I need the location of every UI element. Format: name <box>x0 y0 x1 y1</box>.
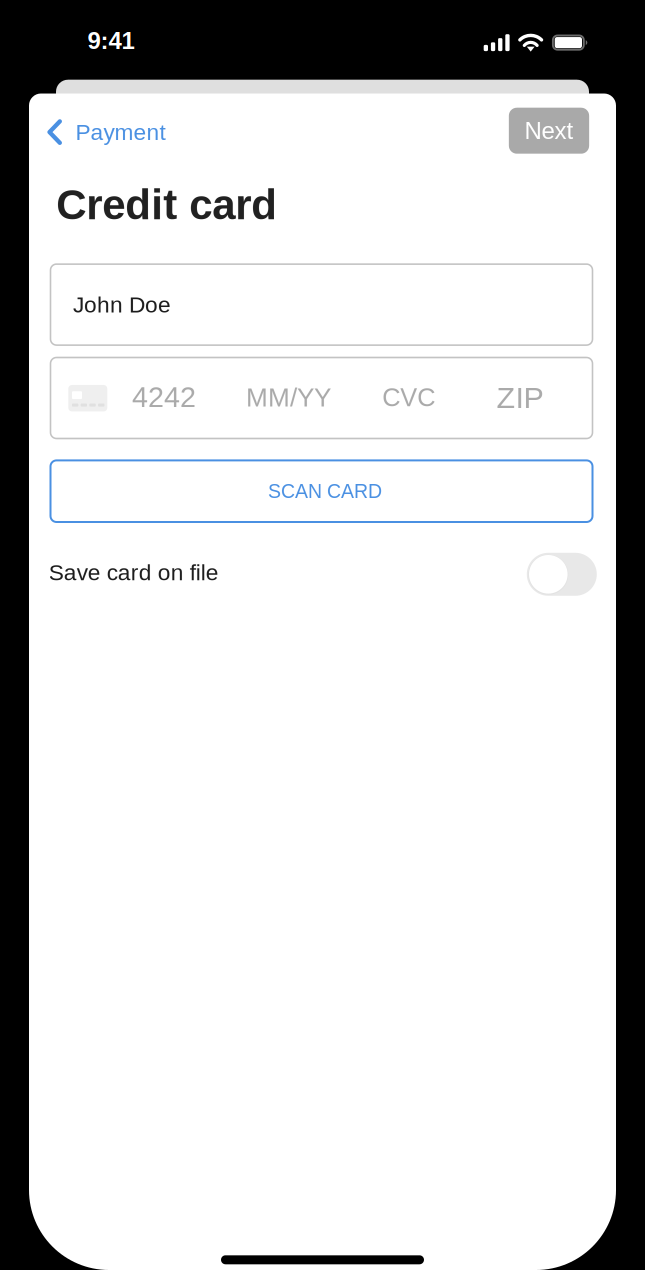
staticText: Credit card <box>56 181 277 228</box>
button[interactable]: SCAN CARD <box>50 460 592 522</box>
staticText: CVC <box>382 383 435 411</box>
staticText: John Doe <box>73 292 171 317</box>
staticText: SCAN CARD <box>268 480 382 502</box>
staticText: MM/YY <box>246 383 331 412</box>
staticText: ZIP <box>496 380 543 414</box>
button[interactable]: Payment <box>47 105 167 159</box>
staticText: Payment <box>76 119 166 145</box>
staticText: Save card on file <box>49 560 219 585</box>
staticText: Next <box>524 117 573 144</box>
button[interactable]: Next <box>509 108 589 154</box>
button[interactable]: Save card on file <box>29 540 616 604</box>
staticText: 9:41 <box>88 27 135 54</box>
button[interactable]: Card number, expiry, CVC and ZIP <box>50 357 592 438</box>
button[interactable]: Cardholder name <box>50 264 592 345</box>
staticText: 4242 <box>132 381 196 413</box>
